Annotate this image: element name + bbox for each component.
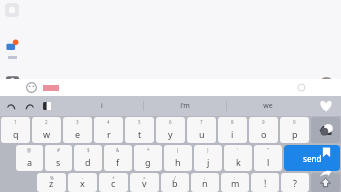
button[interactable]: 4 xyxy=(94,117,123,143)
staticText: 5 xyxy=(138,119,141,125)
button[interactable]: 6 xyxy=(156,117,185,143)
staticText: j xyxy=(207,156,210,168)
button[interactable]: $ xyxy=(74,145,102,171)
staticText: ? xyxy=(293,177,297,189)
staticText: i xyxy=(101,101,103,111)
staticText: - xyxy=(82,175,84,181)
staticText: m xyxy=(231,177,240,189)
button[interactable]: Shift xyxy=(311,173,340,192)
button[interactable]: % xyxy=(37,173,66,192)
staticText: 9 xyxy=(262,119,265,125)
staticText: h xyxy=(175,156,181,168)
staticText: 2 xyxy=(45,119,48,125)
button[interactable]: - xyxy=(68,173,97,192)
staticText: l xyxy=(267,156,270,168)
staticText: send xyxy=(303,153,322,164)
staticText: o xyxy=(261,128,267,140)
button[interactable]: ' xyxy=(224,145,252,171)
staticText: 0 xyxy=(293,119,296,125)
button[interactable]: 3 xyxy=(63,117,92,143)
button[interactable]: Share xyxy=(319,167,333,181)
button[interactable]: Emoji xyxy=(26,82,37,93)
staticText: b xyxy=(172,177,178,189)
staticText: . xyxy=(294,175,296,181)
staticText: 8 xyxy=(231,119,234,125)
staticText: 1 xyxy=(14,119,17,125)
staticText: q xyxy=(13,128,19,140)
staticText: v xyxy=(142,177,147,189)
staticText: t xyxy=(138,128,142,140)
staticText: ) xyxy=(207,147,209,153)
staticText: 7 xyxy=(200,119,203,125)
staticText: c xyxy=(111,177,116,189)
staticText: : xyxy=(234,175,236,181)
button[interactable]: / xyxy=(161,173,189,192)
staticText: f xyxy=(116,156,120,168)
button[interactable]: Clipboard xyxy=(41,100,53,112)
staticText: % xyxy=(50,175,54,181)
staticText: a xyxy=(27,156,33,168)
button[interactable]: we xyxy=(227,96,309,116)
button[interactable]: * xyxy=(134,145,162,171)
button[interactable]: 9 xyxy=(249,117,278,143)
staticText: p xyxy=(292,128,298,140)
staticText: 4 xyxy=(107,119,110,125)
button[interactable]: 1 xyxy=(1,117,30,143)
staticText: + xyxy=(112,175,115,181)
staticText: / xyxy=(174,175,176,181)
staticText: ; xyxy=(204,175,206,181)
staticText: k xyxy=(236,156,241,168)
staticText: i xyxy=(231,128,234,140)
button[interactable]: 0 xyxy=(280,117,309,143)
staticText: " xyxy=(267,147,269,153)
staticText: ( xyxy=(177,147,179,153)
button[interactable]: @ xyxy=(16,145,43,171)
button[interactable]: ) xyxy=(194,145,222,171)
button[interactable]: i'm xyxy=(144,96,226,116)
button[interactable]: 7 xyxy=(187,117,216,143)
button[interactable]: Redo xyxy=(23,100,36,113)
button[interactable]: : xyxy=(221,173,249,192)
button[interactable]: Back xyxy=(5,3,19,17)
staticText: r xyxy=(107,128,111,140)
staticText: u xyxy=(199,128,205,140)
button[interactable]: Voice xyxy=(298,84,305,91)
button[interactable]: . xyxy=(251,173,279,192)
staticText: = xyxy=(143,175,146,181)
staticText: y xyxy=(168,128,173,140)
staticText: g xyxy=(145,156,151,168)
button[interactable]: . xyxy=(281,173,309,192)
staticText: ! xyxy=(264,177,267,189)
button[interactable]: send xyxy=(284,145,340,171)
button[interactable]: = xyxy=(130,173,159,192)
staticText: & xyxy=(116,147,120,153)
staticText: ' xyxy=(237,147,239,153)
staticText: d xyxy=(85,156,91,168)
button[interactable]: Save xyxy=(320,146,333,159)
staticText: * xyxy=(147,147,150,153)
button[interactable]: & xyxy=(104,145,132,171)
button[interactable]: Comment xyxy=(319,123,334,138)
button[interactable]: Undo xyxy=(5,100,18,113)
staticText: e xyxy=(75,128,81,140)
staticText: s xyxy=(56,156,61,168)
button[interactable]: 5 xyxy=(125,117,154,143)
button[interactable]: # xyxy=(45,145,72,171)
button[interactable]: ( xyxy=(164,145,192,171)
button[interactable]: Backspace xyxy=(311,117,340,143)
button[interactable]: Like xyxy=(318,98,334,114)
button[interactable]: " xyxy=(254,145,282,171)
staticText: i'm xyxy=(180,101,190,111)
staticText: # xyxy=(57,147,60,153)
button[interactable]: Profile xyxy=(318,77,335,94)
button[interactable]: Messages xyxy=(5,39,19,53)
staticText: x xyxy=(80,177,85,189)
button[interactable]: Camera xyxy=(6,73,19,86)
staticText: . xyxy=(264,175,266,181)
button[interactable]: 2 xyxy=(32,117,61,143)
button[interactable]: + xyxy=(99,173,128,192)
button[interactable]: ; xyxy=(191,173,219,192)
button[interactable]: 8 xyxy=(218,117,247,143)
